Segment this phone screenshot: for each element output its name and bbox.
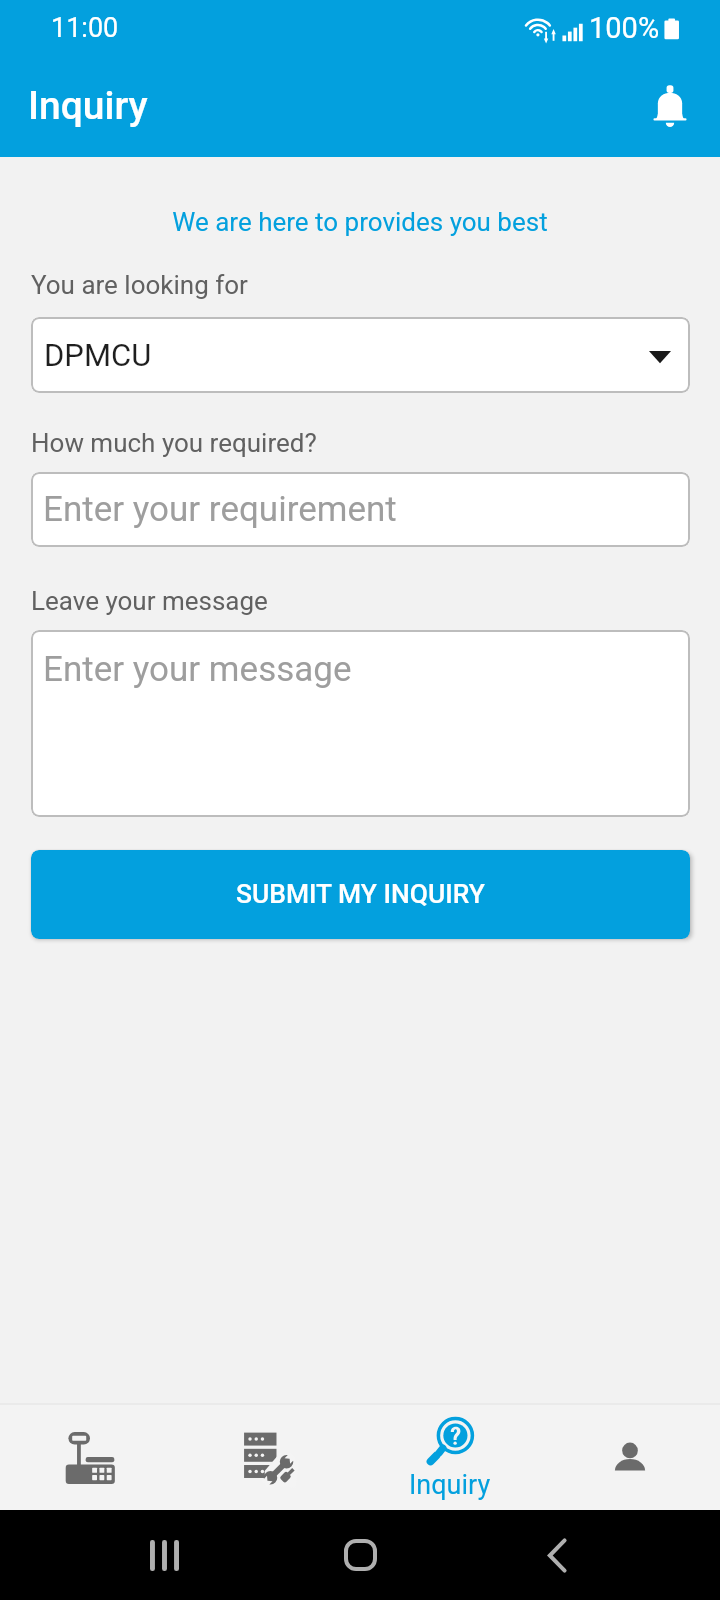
- staticText: Enter your message: [43, 649, 352, 690]
- button[interactable]: Enter your message: [31, 630, 690, 817]
- button[interactable]: DPMCU: [31, 317, 690, 393]
- staticText: You are looking for: [31, 270, 248, 300]
- staticText: Enter your requirement: [43, 489, 397, 530]
- staticText: Leave your message: [31, 586, 268, 616]
- staticText: Inquiry: [409, 1469, 491, 1501]
- button[interactable]: Inquiry: [360, 1405, 540, 1510]
- button[interactable]: Back: [524, 1522, 590, 1588]
- button[interactable]: Home: [327, 1522, 393, 1588]
- button[interactable]: Recent apps: [131, 1522, 197, 1588]
- button[interactable]: Profile: [540, 1405, 720, 1510]
- staticText: How much you required?: [31, 428, 317, 458]
- button[interactable]: SUBMIT MY INQUIRY: [31, 850, 690, 939]
- button[interactable]: Billing: [0, 1405, 180, 1510]
- staticText: DPMCU: [44, 337, 152, 373]
- button[interactable]: Enter your requirement: [31, 472, 690, 547]
- button[interactable]: Service: [180, 1405, 360, 1510]
- staticText: Inquiry: [28, 83, 148, 129]
- staticText: SUBMIT MY INQUIRY: [236, 879, 485, 910]
- staticText: 100%: [589, 11, 660, 45]
- staticText: We are here to provides you best: [0, 207, 720, 237]
- button[interactable]: Notifications: [640, 77, 700, 137]
- staticText: 11:00: [51, 12, 119, 44]
